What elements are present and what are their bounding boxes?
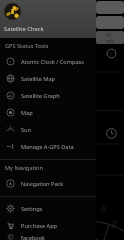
button[interactable]: Purchase App bbox=[0, 217, 96, 234]
button[interactable]: Clock bbox=[106, 128, 117, 139]
button[interactable]: facebook bbox=[0, 234, 96, 240]
button[interactable]: Compass bbox=[106, 48, 117, 59]
staticText: Satellite Map bbox=[21, 75, 55, 83]
button[interactable]: Map bbox=[0, 104, 96, 121]
staticText: Atomic Clock / Compass bbox=[21, 58, 84, 66]
staticText: GPS Status Tools bbox=[5, 42, 49, 50]
button[interactable]: Satellite Graph bbox=[0, 87, 96, 104]
staticText: Satellite Check bbox=[4, 25, 44, 33]
staticText: m/s bbox=[106, 38, 115, 44]
staticText: 160 bbox=[110, 219, 119, 230]
button[interactable]: Satellite Map bbox=[0, 70, 96, 87]
staticText: Purchase App bbox=[21, 222, 58, 230]
staticText: Settings bbox=[21, 205, 43, 213]
button[interactable]: Manage A-GPS Data bbox=[0, 138, 96, 155]
staticText: Satellite Graph bbox=[21, 92, 60, 100]
button[interactable]: Sun bbox=[0, 121, 96, 138]
staticText: Map bbox=[21, 109, 33, 117]
staticText: My Navigation bbox=[5, 164, 43, 172]
staticText: rd bbox=[106, 32, 111, 38]
staticText: 150 bbox=[98, 204, 109, 215]
staticText: Sun bbox=[21, 126, 31, 134]
button[interactable]: Navigation Pack bbox=[0, 175, 96, 192]
staticText: Manage A-GPS Data bbox=[21, 143, 74, 151]
button[interactable]: Atomic Clock / Compass bbox=[0, 53, 96, 70]
staticText: Navigation Pack bbox=[21, 180, 64, 188]
button[interactable]: Settings bbox=[0, 200, 96, 217]
button[interactable]: Satellite Check bbox=[0, 0, 96, 38]
staticText: facebook bbox=[21, 234, 46, 240]
